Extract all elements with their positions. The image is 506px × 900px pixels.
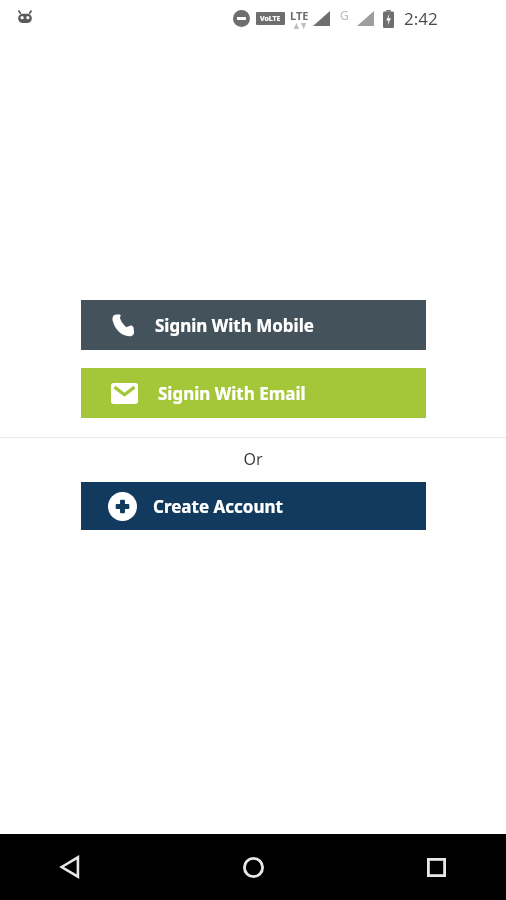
button[interactable]: Back xyxy=(46,843,94,891)
button[interactable]: Recent apps xyxy=(412,843,460,891)
staticText: VoLTE xyxy=(260,14,281,24)
staticText: Signin With Mobile xyxy=(155,314,314,337)
staticText: Signin With Email xyxy=(158,382,306,405)
button[interactable]: Create Account xyxy=(81,482,426,530)
staticText: G xyxy=(340,7,349,23)
button[interactable]: Home xyxy=(229,843,277,891)
staticText: LTE xyxy=(290,8,309,23)
button[interactable]: Signin With Email xyxy=(81,368,426,418)
button[interactable]: Signin With Mobile xyxy=(81,300,426,350)
staticText: Or xyxy=(0,448,506,470)
staticText: Create Account xyxy=(153,495,283,518)
staticText: 2:42 xyxy=(404,7,438,30)
